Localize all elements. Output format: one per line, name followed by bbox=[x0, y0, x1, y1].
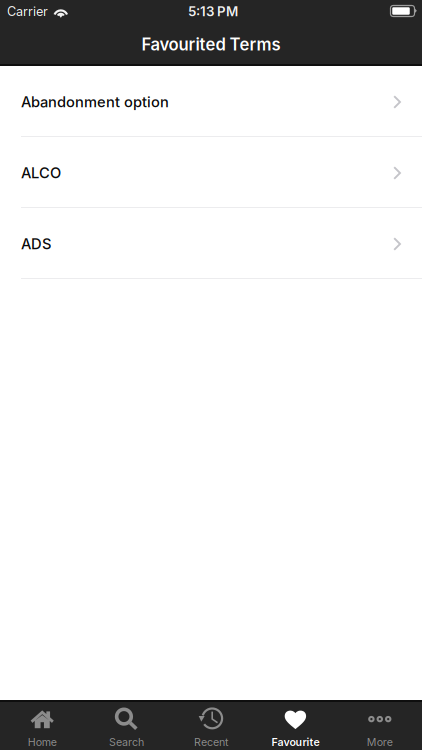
staticText: Home bbox=[28, 736, 57, 748]
staticText: Recent bbox=[194, 736, 228, 748]
staticText: Search bbox=[109, 736, 144, 748]
button[interactable]: ALCO bbox=[0, 137, 422, 208]
button[interactable]: More bbox=[338, 702, 422, 750]
staticText: Favourite bbox=[271, 736, 319, 748]
staticText: Favourited Terms bbox=[141, 34, 280, 55]
staticText: ADS bbox=[21, 235, 51, 253]
button[interactable]: Abandonment option bbox=[0, 66, 422, 137]
button[interactable]: Home bbox=[0, 702, 84, 750]
staticText: ALCO bbox=[21, 164, 61, 182]
button[interactable]: ADS bbox=[0, 208, 422, 279]
staticText: More bbox=[367, 736, 393, 748]
staticText: 5:13 PM bbox=[188, 3, 238, 19]
staticText: Abandonment option bbox=[21, 93, 169, 111]
button[interactable]: Favourite bbox=[253, 702, 338, 750]
button[interactable]: Search bbox=[84, 702, 169, 750]
staticText: Carrier bbox=[7, 4, 48, 19]
button[interactable]: Recent bbox=[169, 702, 253, 750]
